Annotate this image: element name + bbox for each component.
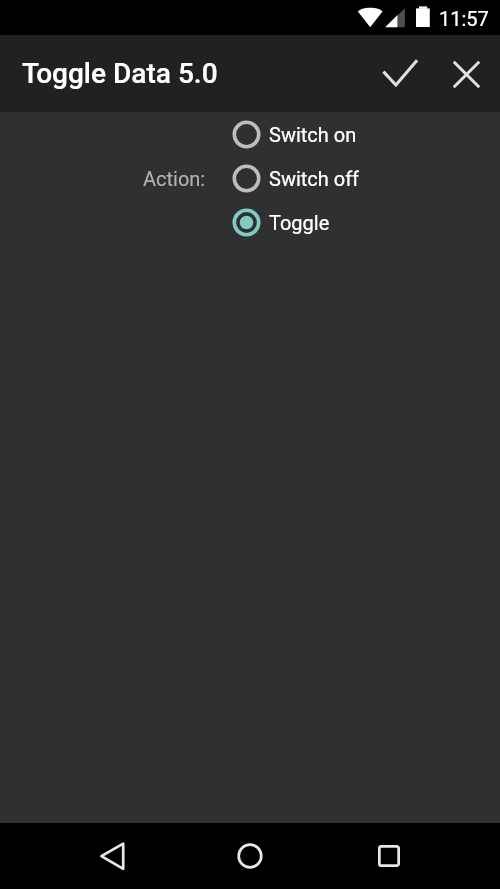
- button[interactable]: Switch off: [231, 156, 360, 200]
- button[interactable]: Switch on: [231, 112, 357, 156]
- staticText: 11:57: [439, 7, 489, 30]
- staticText: Toggle: [269, 211, 330, 234]
- staticText: Toggle Data 5.0: [22, 57, 218, 90]
- button[interactable]: Recents: [361, 828, 417, 884]
- button[interactable]: Back: [83, 828, 139, 884]
- button[interactable]: Home: [222, 828, 278, 884]
- button[interactable]: Toggle: [231, 200, 330, 244]
- staticText: Switch off: [269, 167, 360, 190]
- button[interactable]: Cancel: [438, 46, 494, 102]
- staticText: Switch on: [269, 123, 357, 146]
- staticText: Action:: [143, 167, 206, 190]
- button[interactable]: Done: [371, 46, 427, 102]
